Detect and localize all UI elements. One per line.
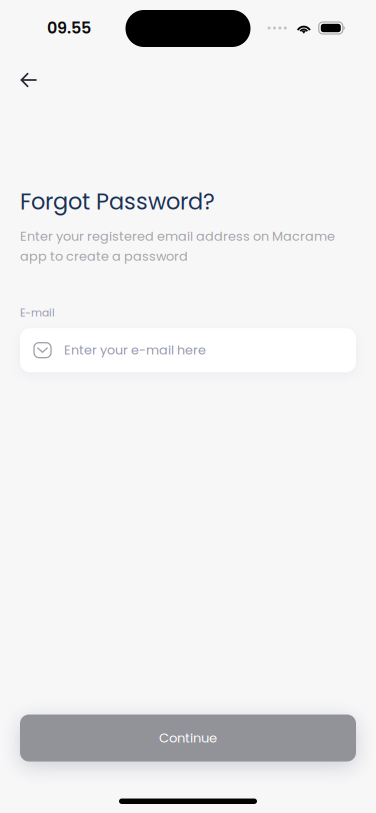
staticText: Enter your e-mail here [64,341,206,359]
staticText: Forgot Password? [20,186,215,217]
staticText: Enter your registered email address on M… [20,227,335,265]
staticText: Continue [159,729,217,747]
staticText: 09.55 [47,17,91,39]
button[interactable]: Back [7,58,51,102]
staticText: E-mail [20,305,55,320]
button[interactable]: Continue [20,714,356,761]
